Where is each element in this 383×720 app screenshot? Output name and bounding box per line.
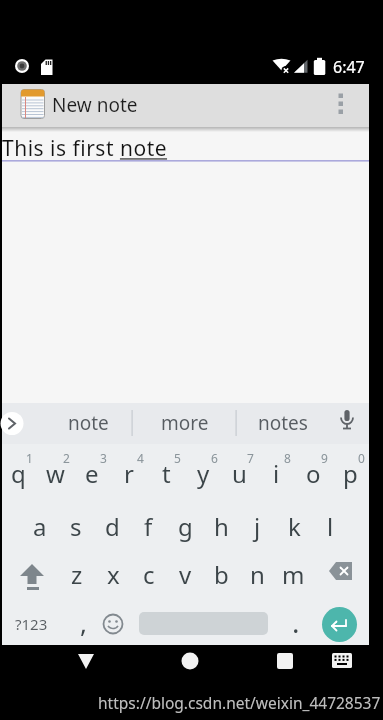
staticText: u — [232, 457, 247, 490]
staticText: 9 — [321, 450, 328, 466]
button[interactable] — [0, 411, 26, 436]
button[interactable]: z — [59, 551, 95, 597]
button[interactable]: r — [111, 450, 147, 496]
button[interactable] — [269, 645, 301, 677]
button[interactable]: i — [258, 450, 294, 496]
staticText: m — [282, 558, 305, 591]
staticText: p — [343, 457, 358, 490]
staticText: a — [33, 510, 47, 543]
button[interactable]: f — [130, 503, 166, 549]
staticText: note — [68, 410, 109, 436]
staticText: 1 — [26, 450, 33, 466]
button[interactable]: n — [239, 551, 275, 597]
staticText: 6:47 — [333, 56, 365, 78]
button[interactable]: more — [140, 405, 230, 441]
button[interactable]: , — [71, 599, 95, 645]
staticText: t — [162, 457, 171, 490]
button[interactable]: notes — [238, 405, 328, 441]
button[interactable]: b — [203, 551, 239, 597]
button[interactable] — [333, 406, 361, 438]
button[interactable] — [70, 645, 102, 677]
staticText: f — [144, 510, 153, 543]
button[interactable] — [330, 86, 356, 125]
button[interactable]: j — [239, 503, 275, 549]
staticText: This is first note — [2, 134, 168, 163]
staticText: . — [292, 603, 300, 641]
button[interactable]: k — [276, 503, 312, 549]
button[interactable]: o — [295, 450, 331, 496]
button[interactable]: note — [43, 405, 133, 441]
button[interactable]: m — [275, 551, 311, 597]
staticText: d — [105, 510, 120, 543]
button[interactable] — [174, 645, 206, 677]
staticText: q — [11, 457, 26, 490]
staticText: more — [161, 410, 209, 436]
button[interactable]: . — [284, 599, 308, 645]
staticText: x — [107, 558, 120, 591]
button[interactable]: q — [0, 450, 36, 496]
staticText: o — [306, 457, 321, 490]
staticText: i — [273, 457, 280, 490]
button[interactable] — [322, 607, 357, 642]
button[interactable]: v — [167, 551, 203, 597]
staticText: e — [85, 457, 99, 490]
button[interactable]: s — [58, 503, 94, 549]
button[interactable]: d — [94, 503, 130, 549]
staticText: s — [70, 510, 82, 543]
button[interactable]: g — [167, 503, 203, 549]
staticText: l — [327, 510, 334, 543]
staticText: w — [46, 457, 65, 490]
staticText: New note — [52, 92, 138, 118]
button[interactable]: h — [203, 503, 239, 549]
staticText: v — [179, 558, 192, 591]
staticText: c — [143, 558, 155, 591]
staticText: 7 — [247, 450, 254, 466]
button[interactable] — [12, 551, 52, 591]
button[interactable]: u — [221, 450, 257, 496]
button[interactable] — [99, 610, 127, 638]
button[interactable]: w — [37, 450, 73, 496]
staticText: n — [250, 558, 265, 591]
staticText: 0 — [358, 450, 365, 466]
button[interactable]: a — [22, 503, 58, 549]
button[interactable]: t — [148, 450, 184, 496]
button[interactable]: x — [95, 551, 131, 597]
staticText: z — [71, 558, 83, 591]
staticText: y — [197, 457, 210, 490]
button[interactable]: l — [312, 503, 348, 549]
button[interactable]: y — [185, 450, 221, 496]
staticText: https://blog.csdn.net/weixin_44728537 — [98, 692, 381, 713]
staticText: 8 — [284, 450, 291, 466]
staticText: r — [124, 457, 134, 490]
staticText: ?123 — [15, 614, 48, 634]
button[interactable] — [324, 551, 364, 591]
staticText: 5 — [174, 450, 181, 466]
staticText: g — [178, 510, 193, 543]
staticText: b — [214, 558, 229, 591]
button[interactable]: ?123 — [9, 601, 53, 647]
button[interactable]: e — [74, 450, 110, 496]
staticText: 6 — [211, 450, 218, 466]
button[interactable]: p — [332, 450, 368, 496]
staticText: 4 — [137, 450, 144, 466]
staticText: 2 — [63, 450, 70, 466]
staticText: , — [80, 605, 87, 640]
button[interactable] — [328, 647, 356, 673]
staticText: 3 — [100, 450, 107, 466]
staticText: k — [288, 510, 301, 543]
staticText: j — [254, 510, 261, 543]
staticText: h — [214, 510, 229, 543]
staticText: notes — [258, 410, 308, 436]
button[interactable]: c — [131, 551, 167, 597]
